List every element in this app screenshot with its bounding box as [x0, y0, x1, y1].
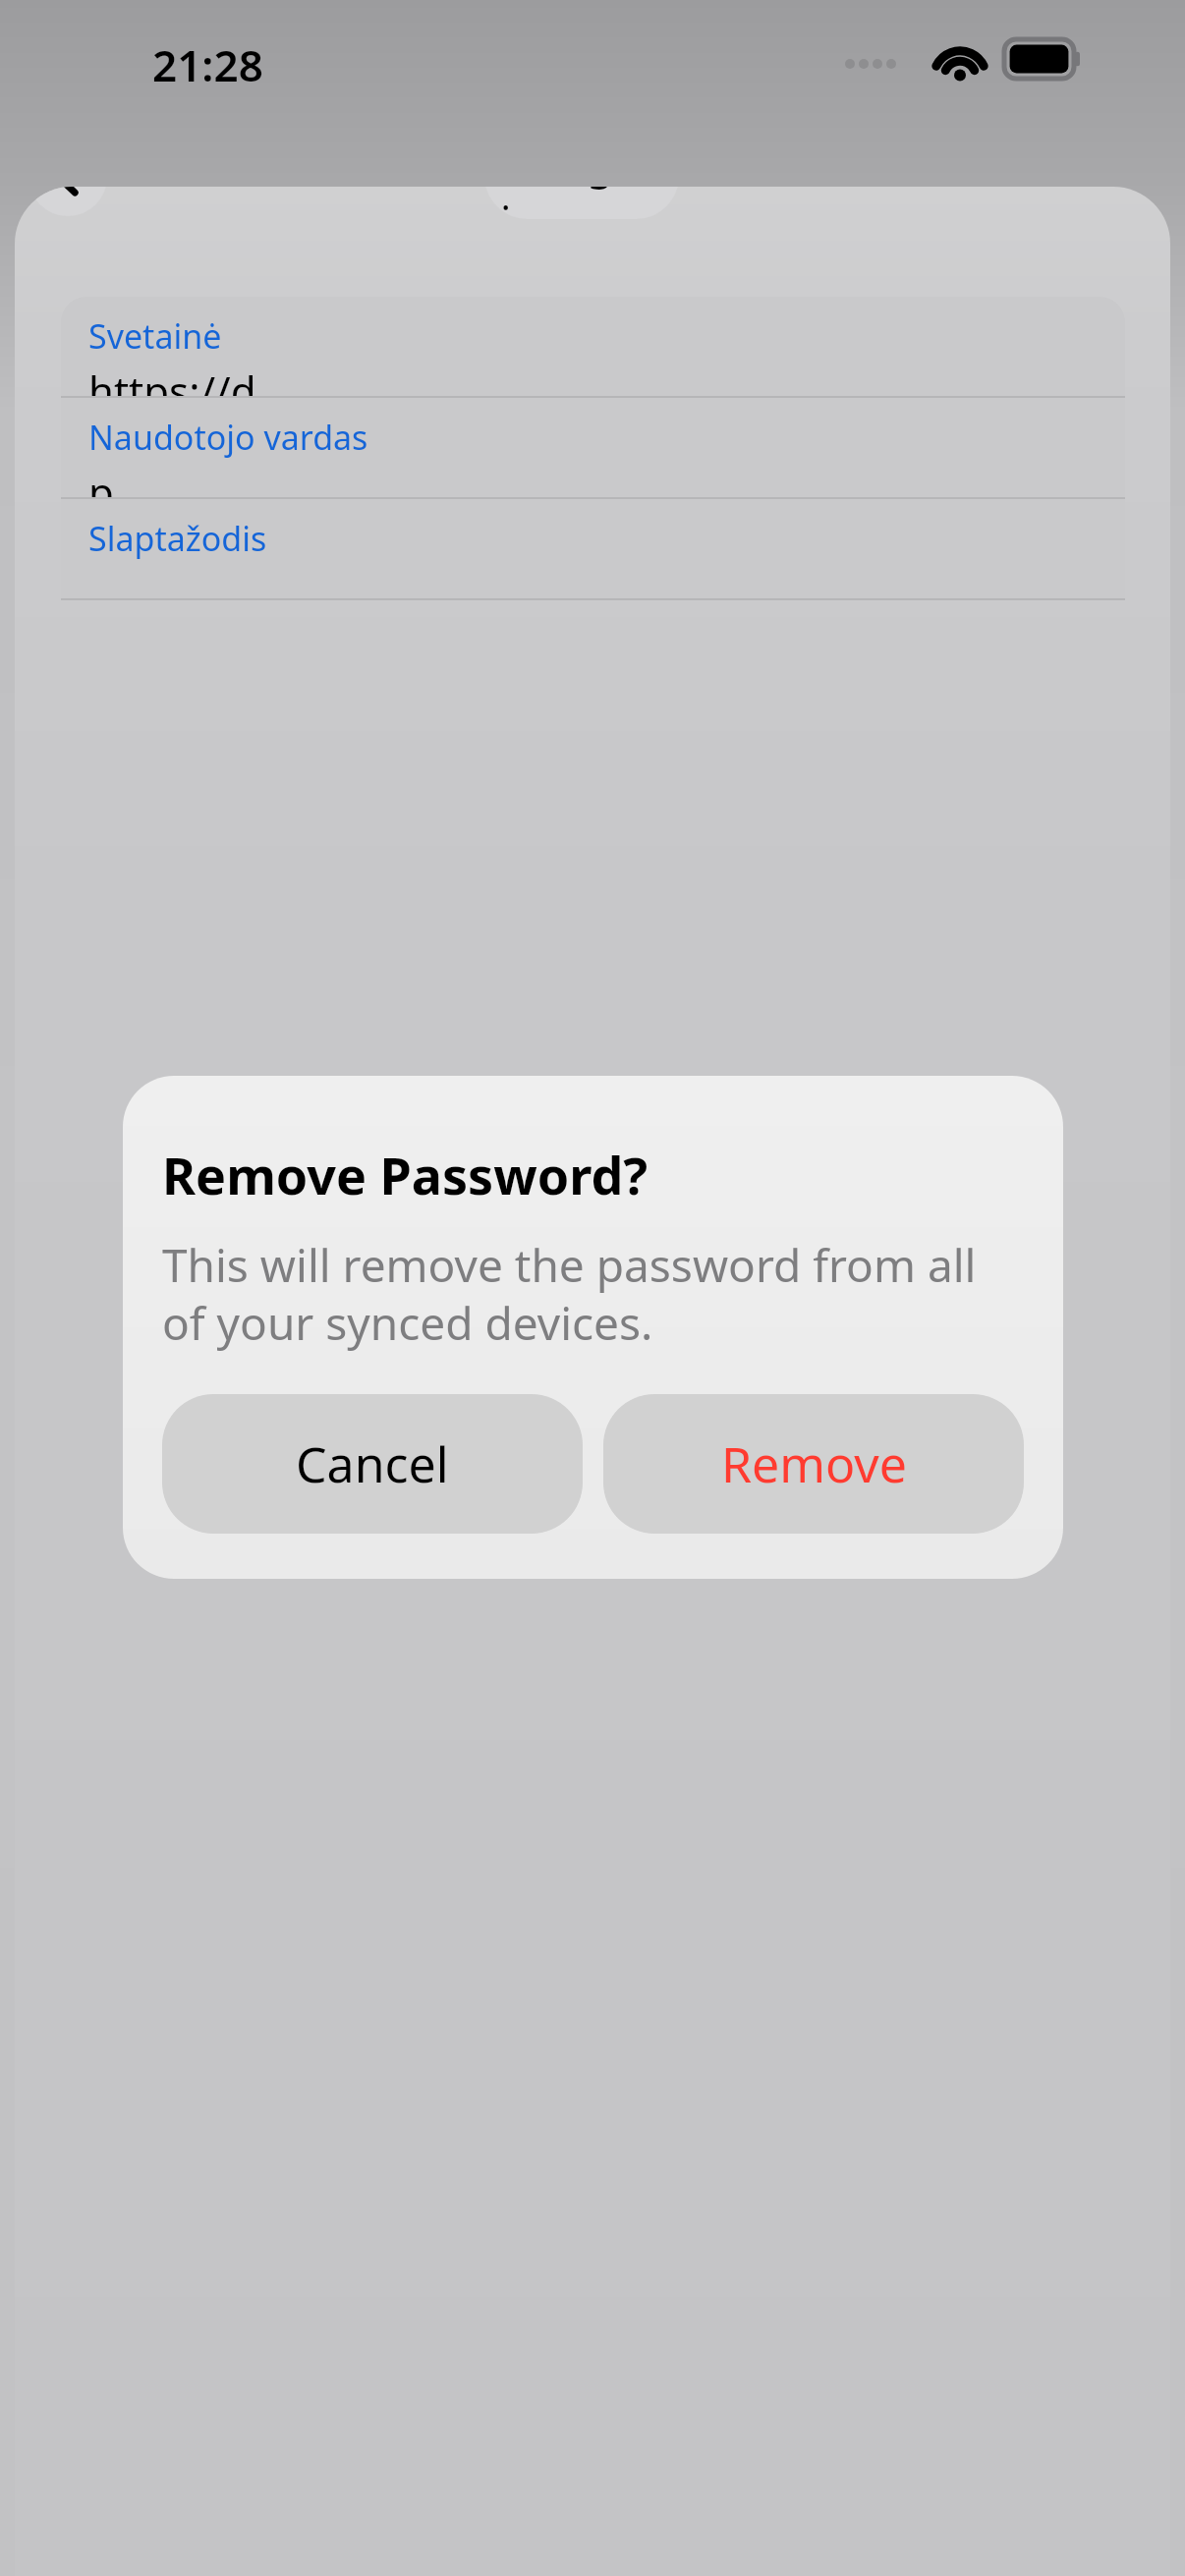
staticText: Remove Password?	[162, 1140, 649, 1209]
staticText: This will remove the password from all o…	[162, 1234, 1024, 1353]
button[interactable]: Naudotojo vardas	[61, 398, 1125, 497]
staticText: 21:28	[152, 35, 263, 94]
staticText: Redaguoti	[484, 187, 679, 219]
staticText: Svetainė	[88, 313, 222, 359]
staticText: Cancel	[296, 1430, 449, 1497]
staticText: p	[88, 464, 114, 497]
staticText: Slaptažodis	[88, 516, 267, 561]
button[interactable]: Redaguoti	[484, 187, 679, 219]
staticText: https://d	[88, 363, 256, 396]
button[interactable]: Slaptažodis	[61, 499, 1125, 598]
button[interactable]: Cancel	[162, 1394, 583, 1534]
staticText: Naudotojo vardas	[88, 415, 368, 460]
button[interactable]: Back	[28, 187, 107, 216]
button[interactable]: Remove	[603, 1394, 1024, 1534]
staticText: Remove	[721, 1430, 907, 1497]
button[interactable]: Svetainė	[61, 297, 1125, 396]
